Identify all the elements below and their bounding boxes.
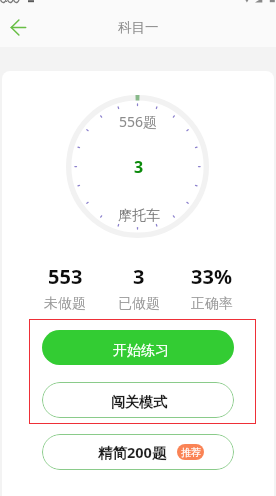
button[interactable]: 闯关模式 — [42, 382, 234, 418]
staticText: 开始练习 — [113, 342, 169, 360]
button[interactable]: Back — [2, 11, 34, 43]
button[interactable]: 开始练习 — [42, 330, 234, 365]
staticText: 精简200题 — [98, 442, 167, 462]
staticText: 未做题 — [44, 295, 86, 313]
button[interactable]: 精简200题 — [42, 434, 234, 470]
staticText: 已做题 — [118, 295, 160, 313]
staticText: 正确率 — [191, 295, 233, 313]
staticText: 556题 — [119, 112, 158, 131]
staticText: 推荐 — [181, 446, 201, 459]
staticText: 摩托车 — [118, 207, 160, 225]
staticText: 3 — [134, 156, 144, 178]
staticText: 科目一 — [118, 19, 159, 36]
staticText: 553 — [48, 263, 83, 290]
staticText: 闯关模式 — [111, 394, 167, 412]
staticText: 3 — [133, 263, 145, 290]
staticText: 33% — [191, 263, 232, 290]
